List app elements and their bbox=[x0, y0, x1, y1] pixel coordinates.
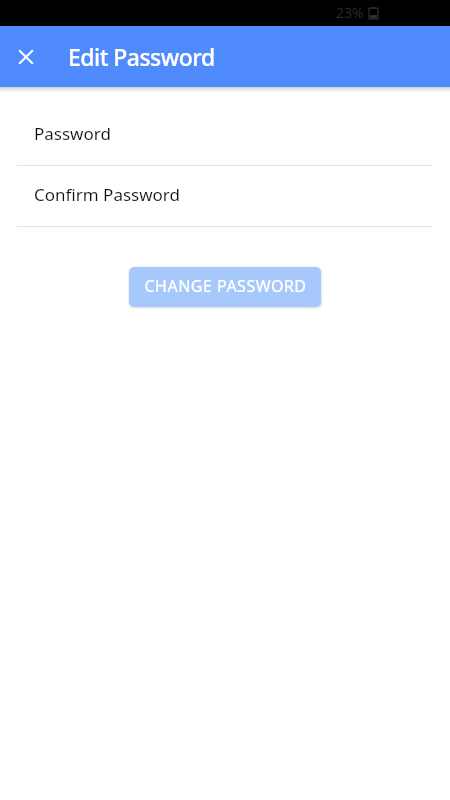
staticText: Edit Password bbox=[68, 41, 215, 72]
button[interactable]: Confirm Password bbox=[0, 166, 450, 226]
button[interactable]: Close bbox=[6, 37, 46, 77]
button[interactable]: Password bbox=[0, 105, 450, 165]
staticText: Confirm Password bbox=[34, 183, 180, 206]
staticText: CHANGE PASSWORD bbox=[144, 275, 307, 297]
staticText: Password bbox=[34, 122, 111, 145]
button[interactable]: CHANGE PASSWORD bbox=[129, 267, 321, 307]
staticText: 23% bbox=[336, 3, 364, 22]
